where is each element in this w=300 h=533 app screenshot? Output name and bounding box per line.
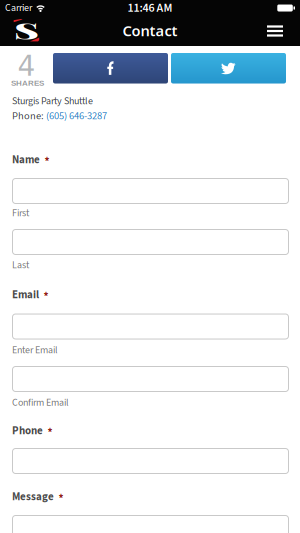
staticText: Confirm Email: [12, 395, 69, 410]
staticText: Name: [12, 152, 40, 168]
staticText: (605) 646-3287: [46, 108, 107, 123]
button[interactable]: Share on Facebook: [53, 53, 168, 83]
button[interactable]: Call (605) 646-3287: [12, 108, 107, 123]
button[interactable]: Home: [13, 21, 39, 45]
staticText: *: [47, 424, 52, 440]
staticText: Carrier: [5, 1, 32, 15]
staticText: 4: [17, 50, 35, 82]
staticText: *: [58, 490, 63, 506]
staticText: Contact: [122, 21, 177, 40]
button[interactable]: Menu: [261, 19, 289, 43]
staticText: Phone: [12, 423, 43, 439]
staticText: Email: [12, 287, 39, 303]
staticText: 11:46 AM: [127, 0, 172, 17]
button[interactable]: Share on Twitter: [171, 53, 286, 83]
staticText: *: [44, 153, 49, 169]
staticText: First: [12, 206, 29, 220]
staticText: *: [43, 288, 48, 304]
staticText: S: [19, 15, 32, 45]
staticText: Phone:: [12, 108, 46, 123]
staticText: Message: [12, 489, 54, 505]
staticText: Enter Email: [12, 343, 58, 357]
staticText: Sturgis Party Shuttle: [12, 94, 93, 108]
staticText: SHARES: [11, 78, 44, 87]
staticText: Last: [12, 258, 29, 272]
